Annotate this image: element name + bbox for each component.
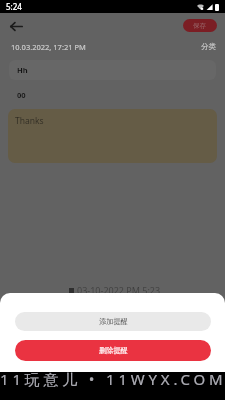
button[interactable]: 保存 [183,19,217,32]
button[interactable]: 03-10-2022 PM 5:23 [69,284,161,296]
button[interactable]: 添加提醒 [15,312,211,331]
staticText: 00 [17,90,26,100]
staticText: 5:24 [6,1,22,12]
button[interactable]: Back [6,16,26,36]
staticText: 保存 [193,22,207,30]
staticText: Hh [17,65,28,75]
staticText: 删除提醒 [99,346,128,355]
button[interactable]: 分类 [201,42,216,51]
staticText: 11玩意儿 • 11WYX.COM [0,369,225,389]
staticText: Thanks [15,115,44,127]
button[interactable]: Hh [9,60,216,80]
staticText: 03-10-2022 PM 5:23 [77,284,161,296]
staticText: 分类 [201,42,216,51]
staticText: 添加提醒 [99,317,128,326]
button[interactable]: 00 [9,84,216,106]
staticText: 10.03.2022, 17:21 PM [11,42,86,52]
button[interactable]: 删除提醒 [15,340,211,361]
